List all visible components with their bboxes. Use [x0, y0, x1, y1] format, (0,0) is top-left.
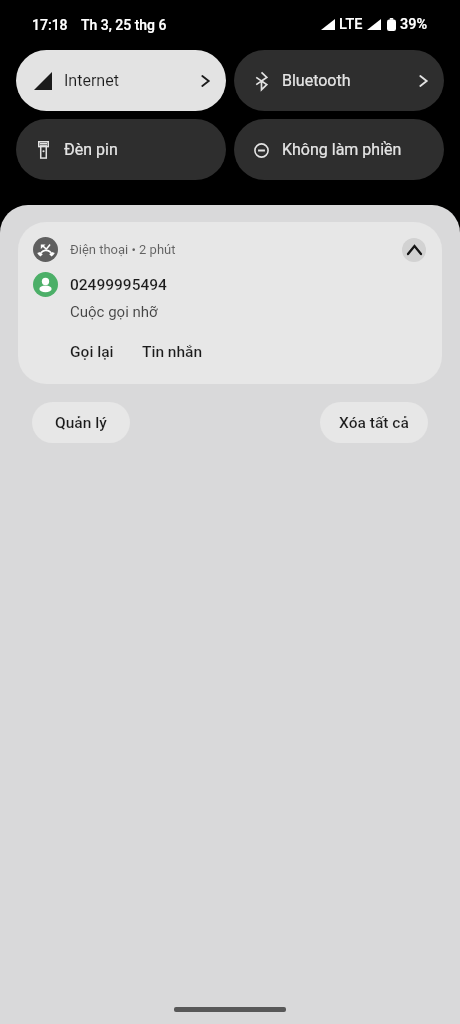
staticText: Cuộc gọi nhỡ	[70, 303, 158, 321]
staticText: Không làm phiền	[282, 140, 402, 159]
staticText: Điện thoại • 2 phút	[70, 242, 176, 257]
staticText: Bluetooth	[282, 71, 351, 90]
button[interactable]: Collapse notification	[402, 238, 426, 262]
button[interactable]: Không làm phiền	[234, 119, 444, 180]
button[interactable]: Xóa tất cả	[320, 402, 428, 443]
staticText: 39%	[400, 16, 428, 33]
button[interactable]: Đèn pin	[16, 119, 226, 180]
button[interactable]: Tin nhắn	[142, 340, 203, 364]
staticText: Xóa tất cả	[339, 414, 409, 432]
staticText: Internet	[64, 71, 119, 90]
button[interactable]: Bluetooth	[234, 50, 444, 111]
button[interactable]: Điện thoại • 2 phút	[18, 222, 442, 384]
staticText: Tin nhắn	[142, 343, 203, 361]
staticText: Đèn pin	[64, 140, 118, 159]
staticText: LTE	[339, 16, 363, 33]
staticText: Quản lý	[55, 414, 107, 432]
staticText: Th 3, 25 thg 6	[81, 17, 167, 33]
staticText: Gọi lại	[70, 343, 114, 361]
staticText: 17:18	[32, 17, 68, 33]
button[interactable]: Internet	[16, 50, 226, 111]
button[interactable]: Gọi lại	[70, 340, 114, 364]
staticText: 02499995494	[70, 276, 167, 294]
button[interactable]: Quản lý	[32, 402, 130, 443]
